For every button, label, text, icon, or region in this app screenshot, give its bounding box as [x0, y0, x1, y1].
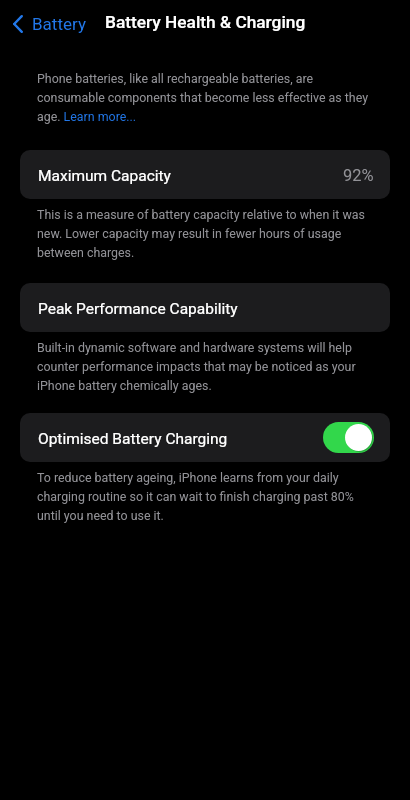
- staticText: Battery Health & Charging: [105, 12, 306, 32]
- staticText: To reduce battery ageing, iPhone learns …: [37, 467, 375, 524]
- staticText: Built-in dynamic software and hardware s…: [37, 337, 375, 394]
- staticText: Maximum Capacity: [38, 167, 171, 185]
- button[interactable]: Optimised Battery Charging, on: [323, 422, 374, 453]
- staticText: Optimised Battery Charging: [38, 430, 228, 448]
- button[interactable]: Maximum Capacity: [20, 150, 390, 199]
- staticText: Phone batteries, like all rechargeable b…: [37, 68, 375, 125]
- button[interactable]: Back to Battery: [8, 9, 90, 39]
- button[interactable]: Optimised Battery Charging: [20, 413, 390, 462]
- staticText: 92%: [343, 166, 374, 185]
- button[interactable]: Peak Performance Capability: [20, 283, 390, 332]
- staticText: Battery: [32, 14, 86, 34]
- staticText: This is a measure of battery capacity re…: [37, 204, 375, 261]
- staticText: Peak Performance Capability: [38, 300, 238, 318]
- button[interactable]: Learn more...: [62, 107, 138, 124]
